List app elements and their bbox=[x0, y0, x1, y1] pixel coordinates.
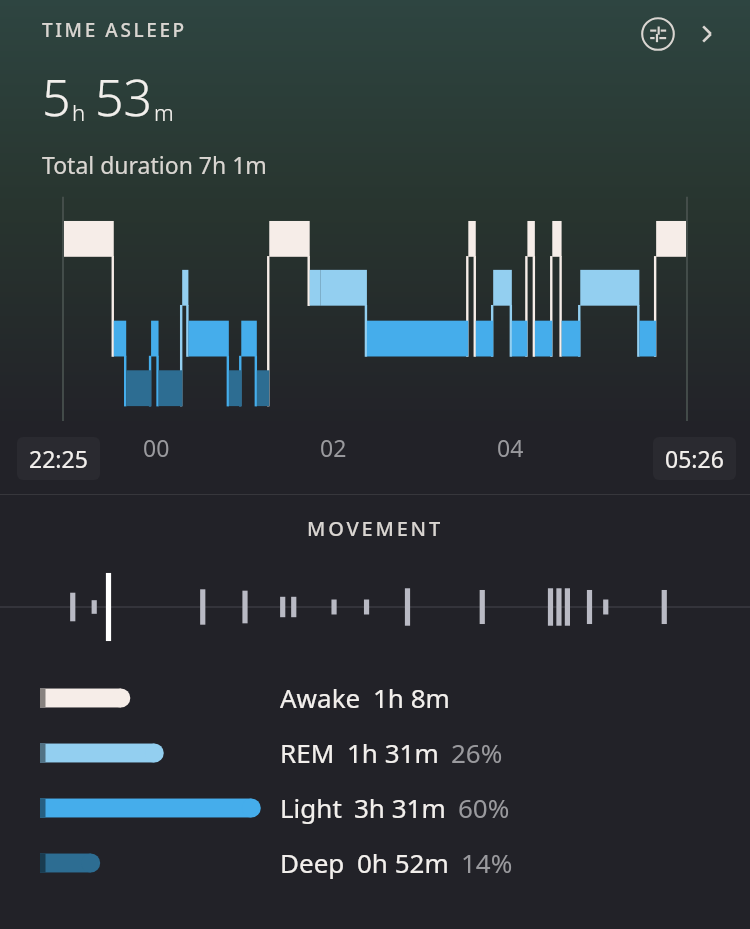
staticText: 02 bbox=[320, 432, 347, 463]
staticText: 04 bbox=[497, 432, 524, 463]
button[interactable] bbox=[0, 570, 750, 644]
staticText: 22:25 bbox=[29, 443, 88, 474]
staticText: 53 bbox=[95, 63, 153, 131]
staticText: 05:26 bbox=[665, 443, 724, 474]
button[interactable]: 22:25 bbox=[17, 437, 100, 480]
staticText: 26% bbox=[451, 735, 503, 770]
staticText: Awake bbox=[280, 680, 361, 715]
staticText: 1h 31m bbox=[347, 735, 439, 770]
button[interactable] bbox=[0, 190, 750, 432]
button[interactable]: Open sleep details bbox=[686, 13, 728, 55]
staticText: h bbox=[72, 97, 86, 127]
staticText: 1h 8m bbox=[373, 680, 450, 715]
staticText: 3h 31m bbox=[354, 790, 446, 825]
staticText: m bbox=[154, 97, 174, 127]
staticText: REM bbox=[280, 735, 335, 770]
staticText: Light bbox=[280, 790, 342, 825]
staticText: Total duration 7h 1m bbox=[42, 149, 267, 180]
staticText: MOVEMENT bbox=[307, 515, 443, 542]
button[interactable]: 05:26 bbox=[653, 437, 736, 480]
button[interactable]: Deep bbox=[40, 845, 750, 880]
button[interactable]: Awake bbox=[40, 680, 750, 715]
staticText: 5 bbox=[42, 63, 71, 131]
button[interactable]: Light bbox=[40, 790, 750, 825]
staticText: 60% bbox=[458, 790, 510, 825]
staticText: 0h 52m bbox=[357, 845, 449, 880]
staticText: 00 bbox=[143, 432, 170, 463]
staticText: Deep bbox=[280, 845, 345, 880]
staticText: 14% bbox=[461, 845, 513, 880]
staticText: TIME ASLEEP bbox=[42, 17, 187, 43]
button[interactable]: REM bbox=[40, 735, 750, 770]
button[interactable]: Adjust sleep settings bbox=[636, 12, 680, 56]
